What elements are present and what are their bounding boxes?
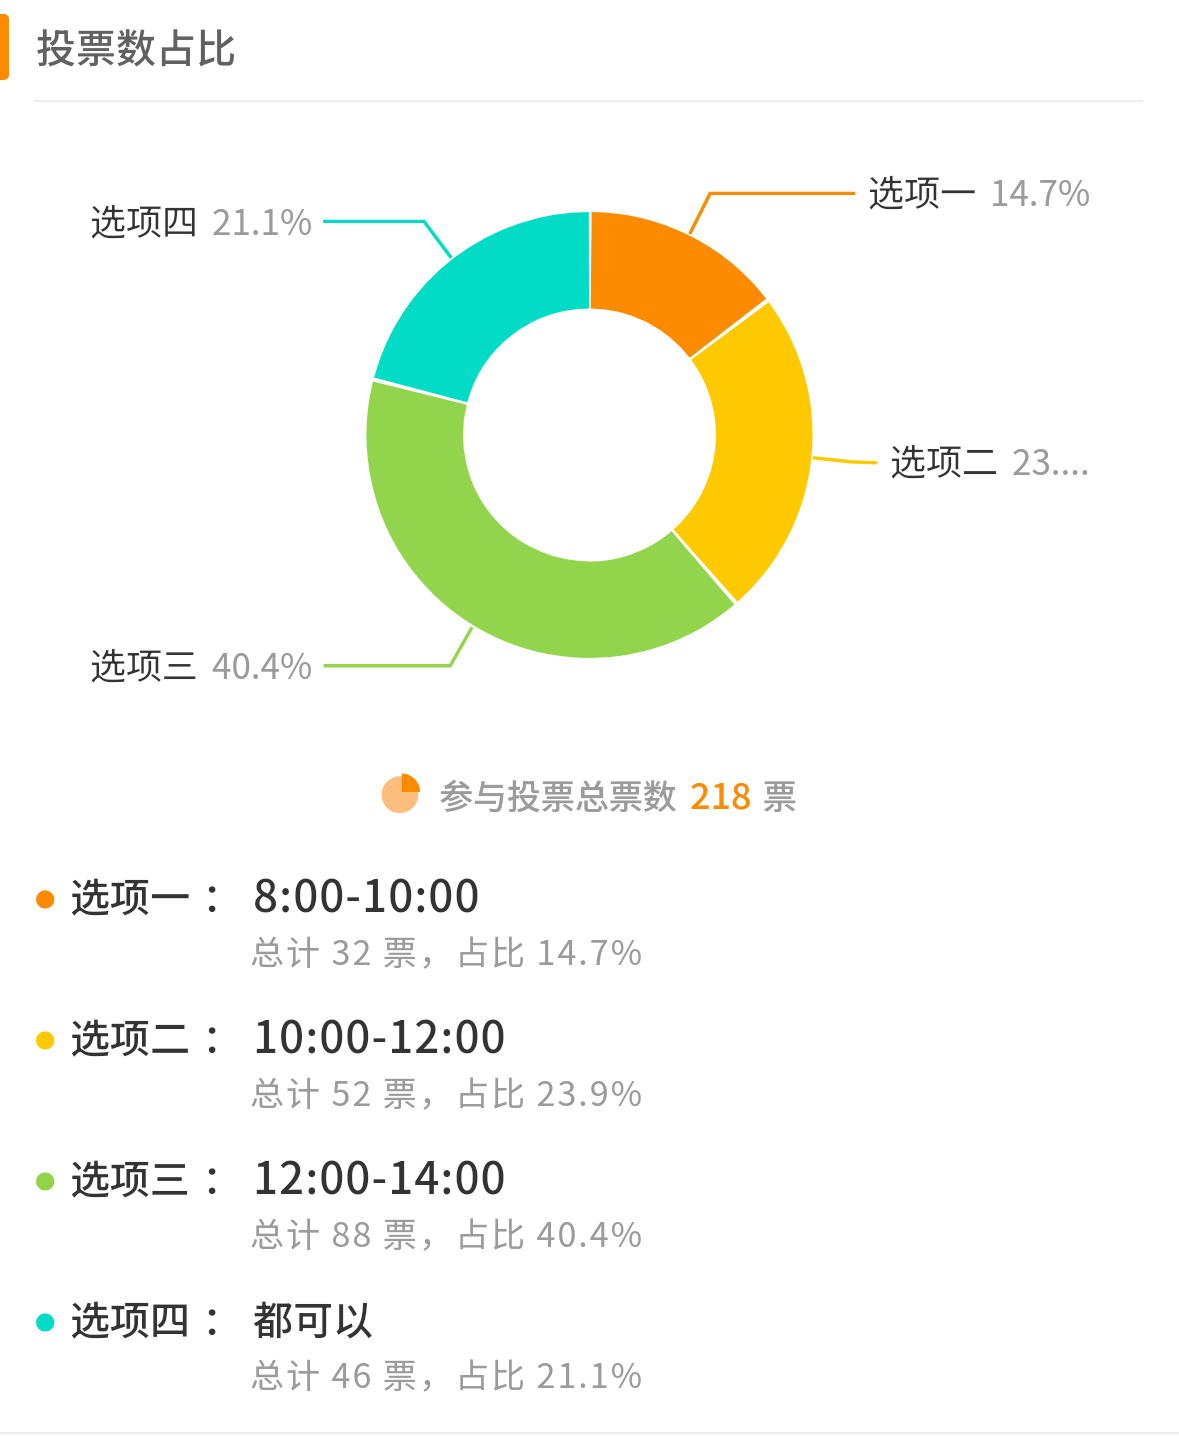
staticText: 票 <box>763 770 797 819</box>
staticText: 选项二 <box>890 433 999 485</box>
staticText: 选项一 <box>70 866 190 924</box>
staticText: 10:00-12:00 <box>253 1002 507 1066</box>
staticText: 选项三 <box>90 637 199 689</box>
other: Total votes <box>375 772 419 816</box>
staticText: 8:00-10:00 <box>253 861 481 925</box>
button[interactable]: 选项二 <box>890 433 999 485</box>
staticText: 选项四 <box>70 1289 190 1347</box>
button[interactable]: 选项二 <box>0 998 1179 1126</box>
staticText: 参与投票总票数 <box>439 770 677 819</box>
staticText: 总计 32 票，占比 14.7% <box>250 926 644 975</box>
button[interactable]: 选项四 <box>90 193 199 245</box>
staticText: ： <box>202 1007 242 1065</box>
staticText: 218 <box>690 767 752 819</box>
staticText: ： <box>202 1148 242 1206</box>
staticText: ： <box>202 866 242 924</box>
staticText: 14.7% <box>990 165 1091 216</box>
button[interactable]: 选项一 <box>0 857 1179 985</box>
staticText: ： <box>202 1289 242 1347</box>
button[interactable]: Total votes <box>375 768 797 820</box>
staticText: 投票数占比 <box>36 17 236 75</box>
staticText: 23.... <box>1012 434 1090 485</box>
staticText: 选项三 <box>70 1148 190 1206</box>
staticText: 总计 46 票，占比 21.1% <box>250 1349 644 1398</box>
staticText: 都可以 <box>253 1289 373 1347</box>
staticText: 选项四 <box>90 193 199 245</box>
button[interactable]: 选项三 <box>90 637 199 689</box>
staticText: 选项二 <box>70 1007 190 1065</box>
staticText: 总计 52 票，占比 23.9% <box>250 1067 644 1116</box>
staticText: 总计 88 票，占比 40.4% <box>250 1208 644 1257</box>
staticText: 选项一 <box>868 164 977 216</box>
button[interactable]: 选项四 <box>0 1280 1179 1408</box>
staticText: 21.1% <box>212 194 313 245</box>
staticText: 40.4% <box>212 638 313 689</box>
button[interactable]: 选项三 <box>0 1139 1179 1267</box>
button[interactable]: 选项一 <box>868 164 977 216</box>
staticText: 12:00-14:00 <box>253 1143 507 1207</box>
